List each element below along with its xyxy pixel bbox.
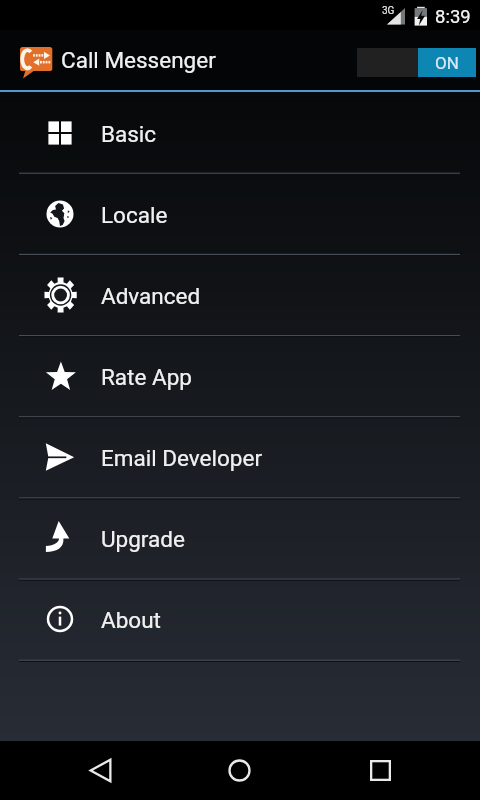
staticText: Rate App [101,364,192,390]
button[interactable]: Basic [0,92,480,173]
button[interactable]: Rate App [0,335,480,416]
staticText: Email Developer [101,445,263,471]
staticText: Advanced [101,283,201,309]
button[interactable]: Home [209,741,269,800]
button[interactable]: Advanced [0,254,480,335]
staticText: 3G [382,5,395,17]
staticText: Call Messenger [61,47,216,73]
button[interactable]: Service enabled, ON [357,48,476,77]
button[interactable]: Back [70,741,130,800]
button[interactable]: Email Developer [0,416,480,497]
staticText: Locale [101,202,168,228]
staticText: 8:39 [435,6,471,28]
button[interactable]: About [0,578,480,659]
button[interactable]: Recent apps [350,741,410,800]
staticText: Upgrade [101,526,185,552]
staticText: Basic [101,121,157,147]
staticText: ON [435,53,459,73]
button[interactable]: Upgrade [0,497,480,578]
staticText: About [101,607,161,633]
button[interactable]: Locale [0,173,480,254]
